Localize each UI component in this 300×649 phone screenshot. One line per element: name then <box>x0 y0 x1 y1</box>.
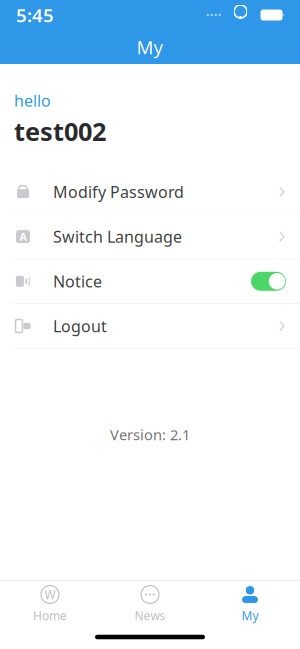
button[interactable]: W <box>0 578 100 627</box>
button[interactable]: News <box>100 578 200 627</box>
button[interactable]: Logout <box>0 304 300 349</box>
button[interactable]: My <box>200 578 300 627</box>
staticText: hello <box>14 90 51 111</box>
staticText: Modify Password <box>53 181 184 202</box>
staticText: 5:45 <box>16 3 54 27</box>
staticText: A <box>19 229 26 244</box>
button[interactable]: Modify Password <box>0 170 300 215</box>
staticText: test002 <box>14 114 106 148</box>
staticText: Home <box>33 607 67 623</box>
staticText: Switch Language <box>53 226 182 247</box>
staticText: Logout <box>53 315 107 337</box>
staticText: Version: 2.1 <box>110 425 190 444</box>
staticText: W <box>44 587 55 602</box>
staticText: My <box>241 607 258 623</box>
button[interactable]: A <box>0 215 300 259</box>
staticText: Notice <box>53 271 102 292</box>
staticText: News <box>134 607 165 623</box>
staticText: My <box>136 35 163 59</box>
button[interactable]: Notice <box>0 259 300 304</box>
